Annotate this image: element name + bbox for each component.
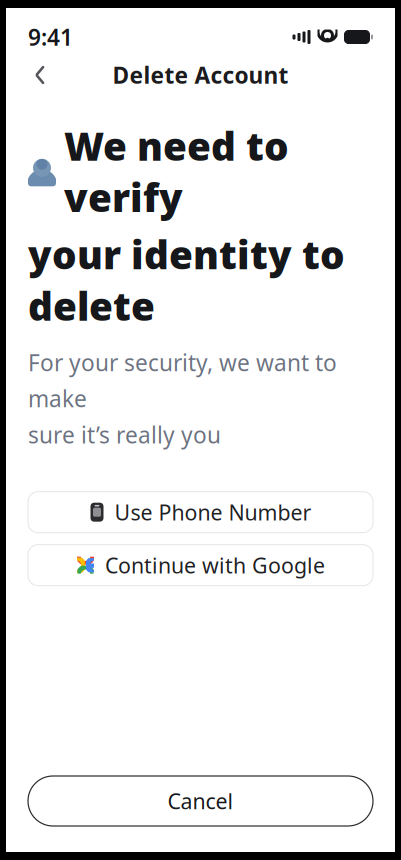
staticText: 9:41 — [28, 22, 73, 52]
button[interactable]: Cancel — [28, 776, 373, 826]
button[interactable]: Back — [18, 53, 62, 97]
staticText: We need to verify — [64, 120, 289, 223]
staticText: Cancel — [167, 787, 233, 815]
staticText: your identity to delete — [28, 229, 345, 331]
staticText: Continue with Google — [105, 551, 325, 579]
staticText: Delete Account — [112, 60, 288, 90]
button[interactable]: Use Phone Number — [28, 492, 373, 533]
button[interactable]: Continue with Google — [28, 545, 373, 586]
staticText: Use Phone Number — [114, 498, 311, 526]
staticText: For your security, we want to make sure … — [28, 347, 337, 450]
